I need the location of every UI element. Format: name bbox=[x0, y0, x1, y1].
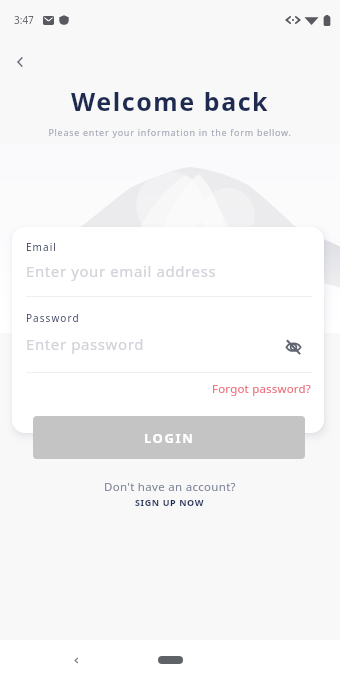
button[interactable]: Forgot password? bbox=[212, 381, 312, 397]
button[interactable]: Show password bbox=[280, 333, 306, 359]
staticText: Enter password bbox=[26, 334, 144, 354]
staticText: Enter your email address bbox=[26, 261, 217, 281]
button[interactable]: Back bbox=[64, 648, 88, 672]
button[interactable]: SIGN UP NOW bbox=[135, 496, 205, 508]
staticText: 3:47 bbox=[14, 13, 34, 27]
staticText: SIGN UP NOW bbox=[135, 496, 205, 508]
button[interactable]: LOGIN bbox=[33, 416, 305, 459]
staticText: Welcome back bbox=[71, 84, 270, 118]
button[interactable]: Home bbox=[158, 656, 183, 664]
button[interactable]: Back bbox=[3, 45, 37, 79]
staticText: Password bbox=[26, 311, 80, 325]
staticText: LOGIN bbox=[144, 429, 195, 447]
staticText: Forgot password? bbox=[212, 381, 312, 397]
staticText: Please enter your information in the for… bbox=[48, 126, 292, 138]
staticText: Don't have an account? bbox=[104, 479, 236, 495]
staticText: Email bbox=[26, 240, 57, 254]
